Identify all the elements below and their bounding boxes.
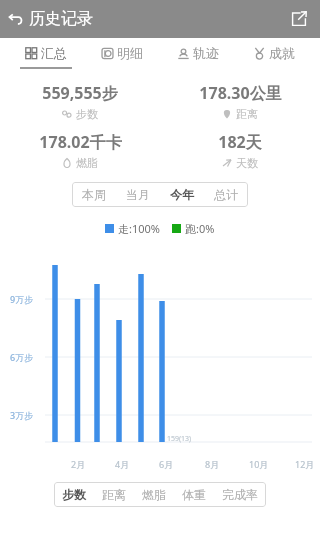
staticText: 燃脂: [142, 487, 166, 502]
staticText: 12月: [295, 458, 315, 470]
staticText: 178.30公里: [199, 82, 282, 104]
staticText: 9万步: [10, 293, 34, 305]
staticText: 2月: [71, 458, 86, 470]
button[interactable]: 总计: [204, 182, 248, 207]
button[interactable]: 178.30公里: [160, 82, 320, 121]
button[interactable]: 燃脂: [134, 482, 174, 507]
staticText: 跑:0%: [185, 221, 215, 236]
staticText: 轨迹: [193, 45, 219, 61]
button[interactable]: 明细: [92, 45, 152, 69]
staticText: 燃脂: [76, 156, 98, 170]
staticText: 今年: [170, 187, 194, 202]
staticText: 天数: [236, 156, 258, 170]
button[interactable]: 汇总: [16, 45, 76, 69]
staticText: 成就: [269, 45, 295, 61]
staticText: 559,555步: [42, 82, 118, 104]
staticText: 历史记录: [29, 9, 93, 29]
staticText: 总计: [214, 187, 238, 202]
button[interactable]: 559,555步: [0, 82, 160, 121]
staticText: 体重: [182, 487, 206, 502]
button[interactable]: 182天: [160, 131, 320, 170]
staticText: 距离: [102, 487, 126, 502]
button[interactable]: Share: [286, 6, 312, 32]
button[interactable]: Back: [0, 5, 101, 33]
staticText: 汇总: [41, 45, 67, 61]
button[interactable]: 轨迹: [168, 45, 228, 69]
staticText: 6月: [159, 458, 174, 470]
staticText: 182天: [218, 131, 262, 153]
button[interactable]: 本周: [72, 182, 116, 207]
staticText: 本周: [82, 187, 106, 202]
button[interactable]: 完成率: [214, 482, 266, 507]
button[interactable]: 体重: [174, 482, 214, 507]
button[interactable]: 当月: [116, 182, 160, 207]
button[interactable]: 今年: [160, 182, 204, 207]
staticText: 159(13): [167, 434, 192, 444]
staticText: 走:100%: [118, 221, 160, 236]
staticText: 明细: [117, 45, 143, 61]
staticText: 3万步: [10, 409, 34, 421]
staticText: 距离: [236, 107, 258, 121]
button[interactable]: 178.02千卡: [0, 131, 160, 170]
staticText: 完成率: [222, 487, 258, 502]
staticText: 8月: [205, 458, 220, 470]
staticText: 10月: [249, 458, 269, 470]
staticText: 6万步: [10, 351, 34, 363]
staticText: 当月: [126, 187, 150, 202]
button[interactable]: 成就: [244, 45, 304, 69]
staticText: 4月: [115, 458, 130, 470]
staticText: 步数: [62, 487, 86, 502]
button[interactable]: 步数: [54, 482, 94, 507]
button[interactable]: 距离: [94, 482, 134, 507]
staticText: 178.02千卡: [39, 131, 122, 153]
other: Back: [8, 12, 23, 27]
staticText: 步数: [76, 107, 98, 121]
